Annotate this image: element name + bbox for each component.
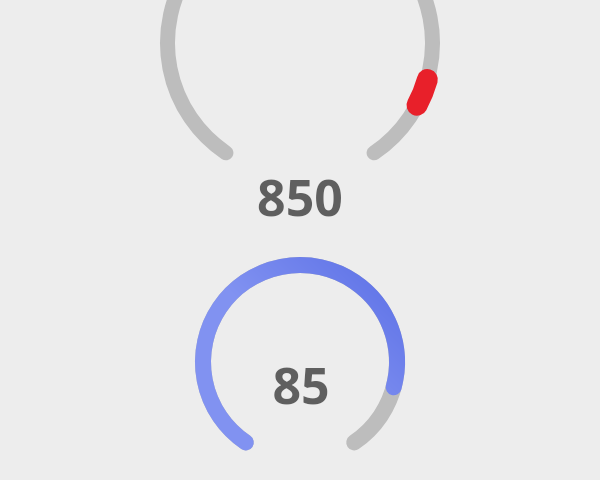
- staticText: 85: [272, 351, 330, 419]
- button[interactable]: Calories gauge, 850: [0, 0, 600, 480]
- staticText: 850: [257, 163, 343, 231]
- button[interactable]: Score gauge, 85: [0, 0, 600, 480]
